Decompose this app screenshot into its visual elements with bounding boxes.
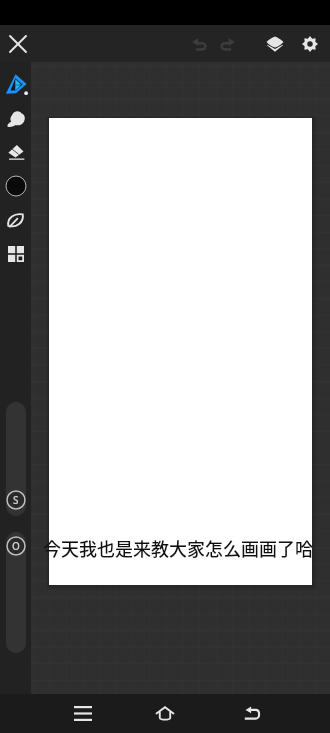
- button[interactable]: Home: [143, 694, 187, 733]
- button[interactable]: Smudge: [0, 101, 31, 135]
- button[interactable]: Eraser: [0, 135, 31, 169]
- button[interactable]: Brush: [0, 67, 31, 101]
- staticText: O: [12, 539, 20, 553]
- button[interactable]: Brush size: [6, 402, 26, 516]
- button[interactable]: Back: [230, 694, 274, 733]
- button[interactable]: Recents: [61, 694, 105, 733]
- button[interactable]: Opacity: [6, 532, 26, 653]
- button[interactable]: Size: [6, 490, 26, 510]
- staticText: 今天我也是来教大家怎么画画了哈: [43, 535, 313, 561]
- button[interactable]: Color: [0, 169, 31, 203]
- button[interactable]: Opacity: [6, 536, 26, 556]
- button[interactable]: Redo: [212, 25, 244, 62]
- button[interactable]: Undo: [183, 25, 215, 62]
- button[interactable]: Settings: [294, 25, 326, 62]
- button[interactable]: Layers: [259, 25, 291, 62]
- button[interactable]: Grid: [0, 237, 31, 271]
- button[interactable]: Shape: [0, 203, 31, 237]
- button[interactable]: Close: [2, 25, 34, 62]
- staticText: S: [13, 493, 19, 507]
